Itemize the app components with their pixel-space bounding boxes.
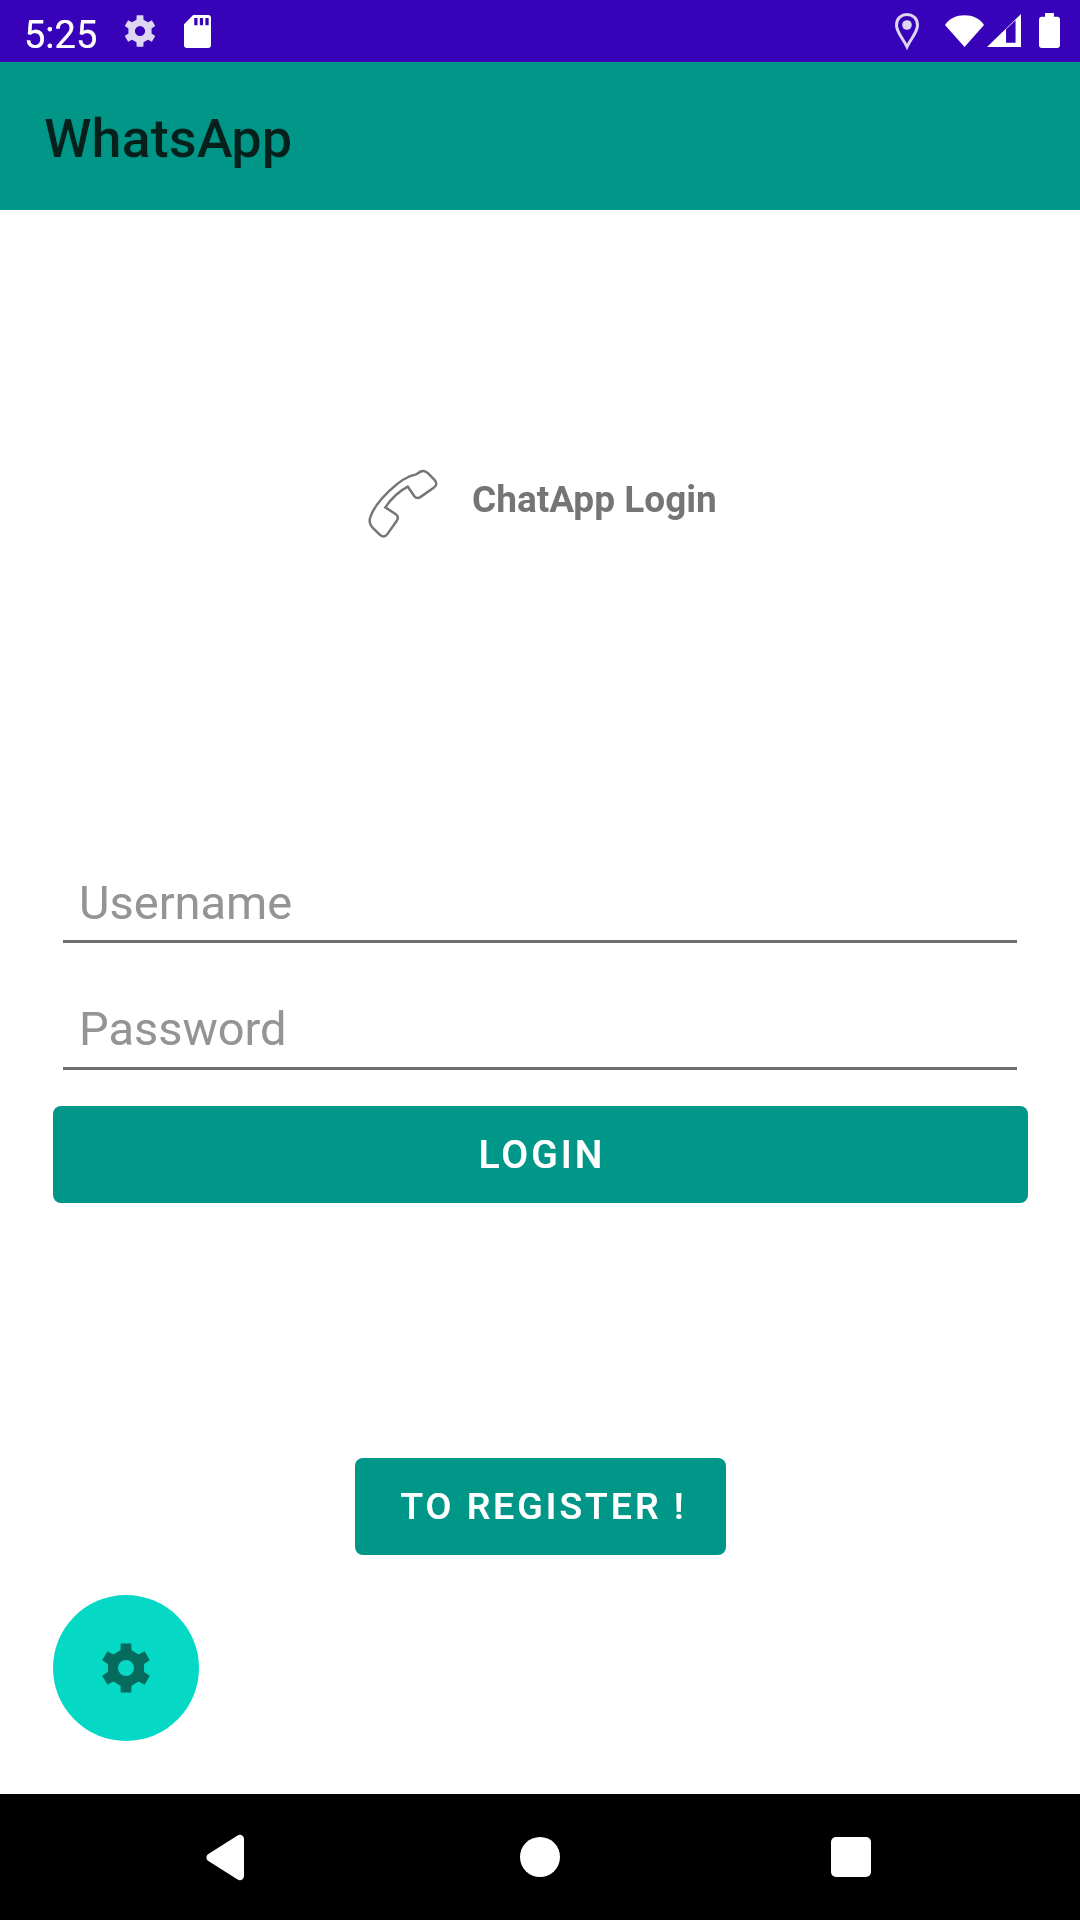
staticText: Username bbox=[79, 875, 293, 930]
button[interactable]: TO REGISTER ! bbox=[355, 1458, 726, 1555]
staticText: Password bbox=[79, 1001, 287, 1056]
button[interactable]: Recent apps bbox=[791, 1794, 911, 1920]
button[interactable]: Settings bbox=[53, 1595, 199, 1741]
staticText: 5:25 bbox=[24, 13, 98, 58]
staticText: LOGIN bbox=[478, 1132, 606, 1178]
button[interactable]: Username bbox=[63, 850, 1017, 942]
button[interactable]: LOGIN bbox=[53, 1106, 1028, 1203]
button[interactable]: Password bbox=[63, 976, 1017, 1068]
staticText: WhatsApp bbox=[44, 107, 293, 170]
button[interactable]: Home bbox=[480, 1794, 600, 1920]
button[interactable]: Back bbox=[165, 1794, 285, 1920]
staticText: ChatApp Login bbox=[472, 478, 717, 521]
staticText: TO REGISTER ! bbox=[400, 1484, 687, 1528]
